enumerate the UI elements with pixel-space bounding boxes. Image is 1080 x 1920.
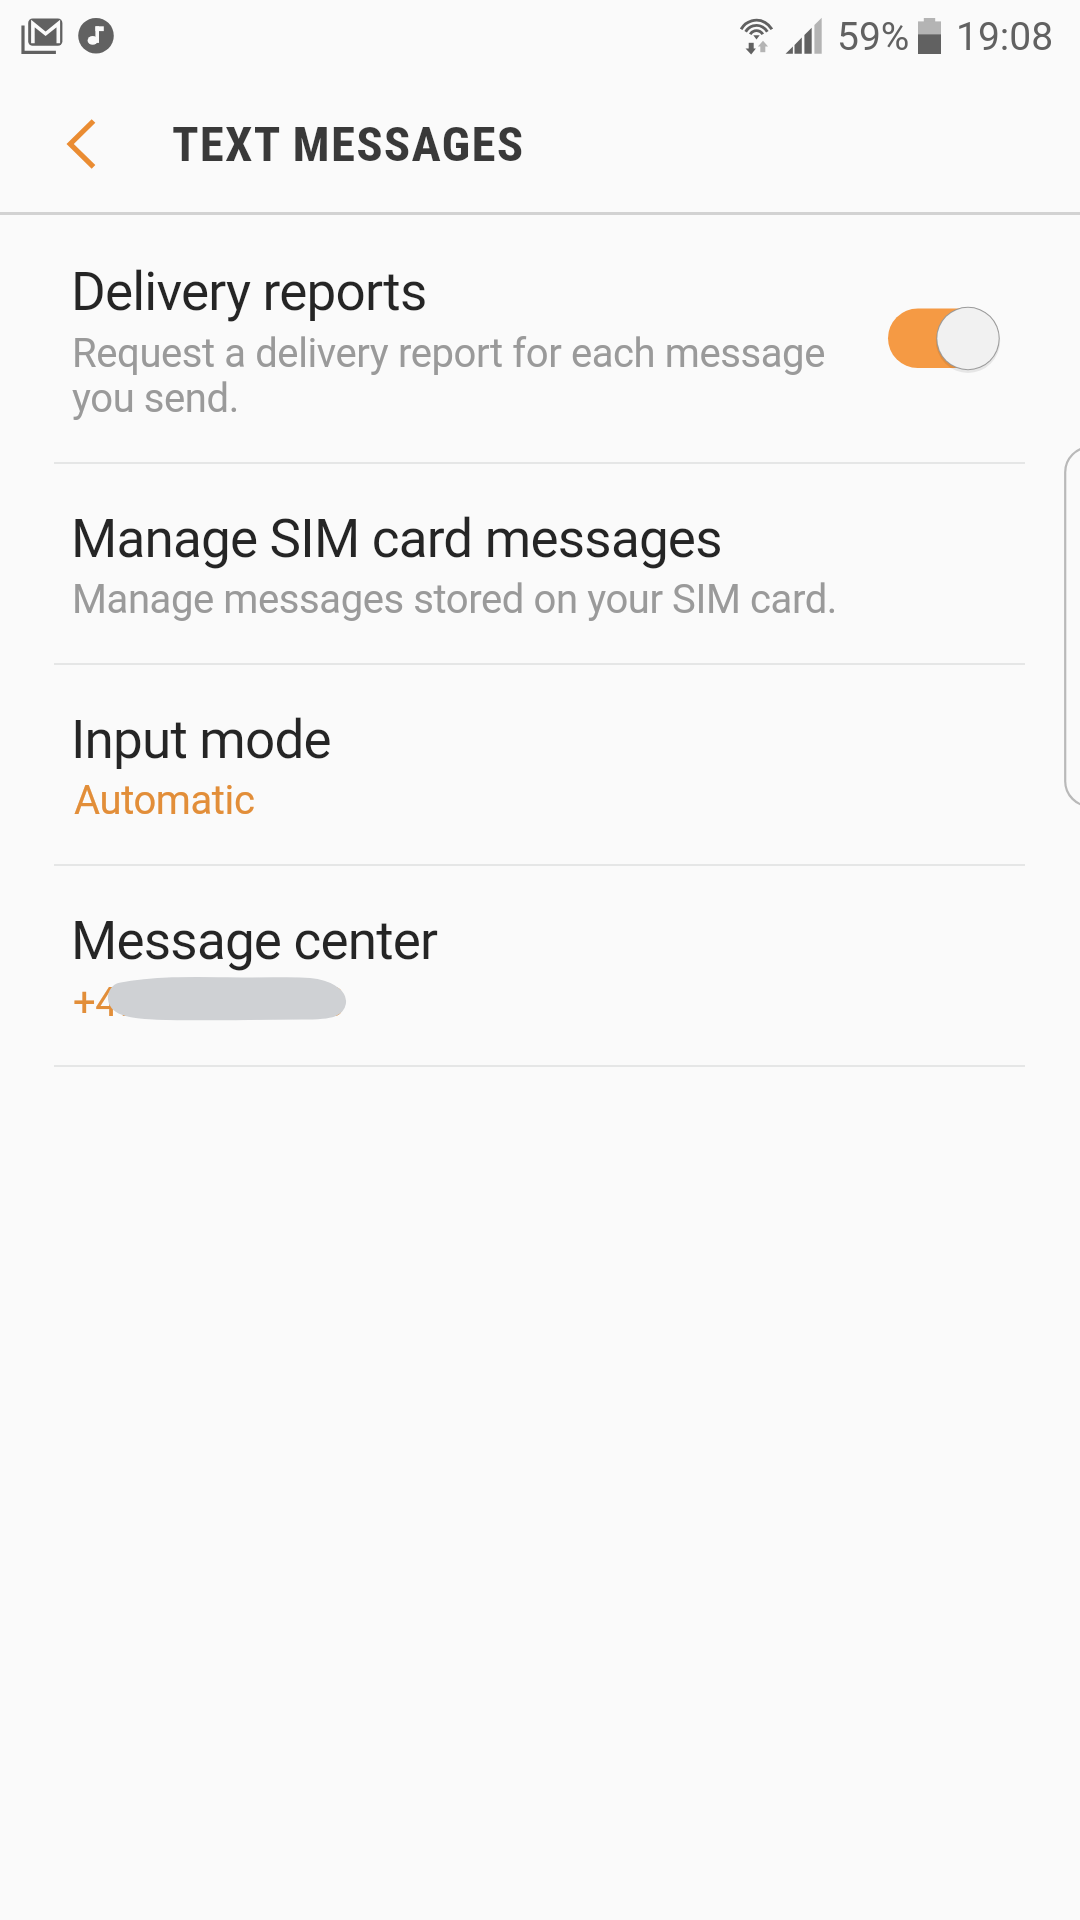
- staticText: Message center: [71, 910, 438, 972]
- button[interactable]: Manage SIM card messages: [0, 464, 1080, 663]
- button[interactable]: Message center: [0, 866, 1080, 1065]
- staticText: Delivery reports: [71, 261, 427, 323]
- button[interactable]: Navigate up: [37, 99, 125, 187]
- staticText: Manage SIM card messages: [71, 508, 722, 570]
- staticText: Input mode: [71, 709, 331, 771]
- staticText: 59%: [837, 14, 910, 60]
- staticText: Request a delivery report for each messa…: [72, 330, 825, 421]
- button[interactable]: Delivery reports: [0, 215, 1080, 462]
- button[interactable]: Input mode: [0, 665, 1080, 864]
- staticText: TEXT MESSAGES: [172, 116, 525, 173]
- button[interactable]: Delivery reports, on: [870, 290, 1010, 380]
- staticText: Automatic: [74, 777, 255, 824]
- staticText: 19:08: [956, 14, 1054, 60]
- staticText: +47 000 00 000: [73, 979, 345, 1026]
- staticText: Manage messages stored on your SIM card.: [72, 576, 837, 623]
